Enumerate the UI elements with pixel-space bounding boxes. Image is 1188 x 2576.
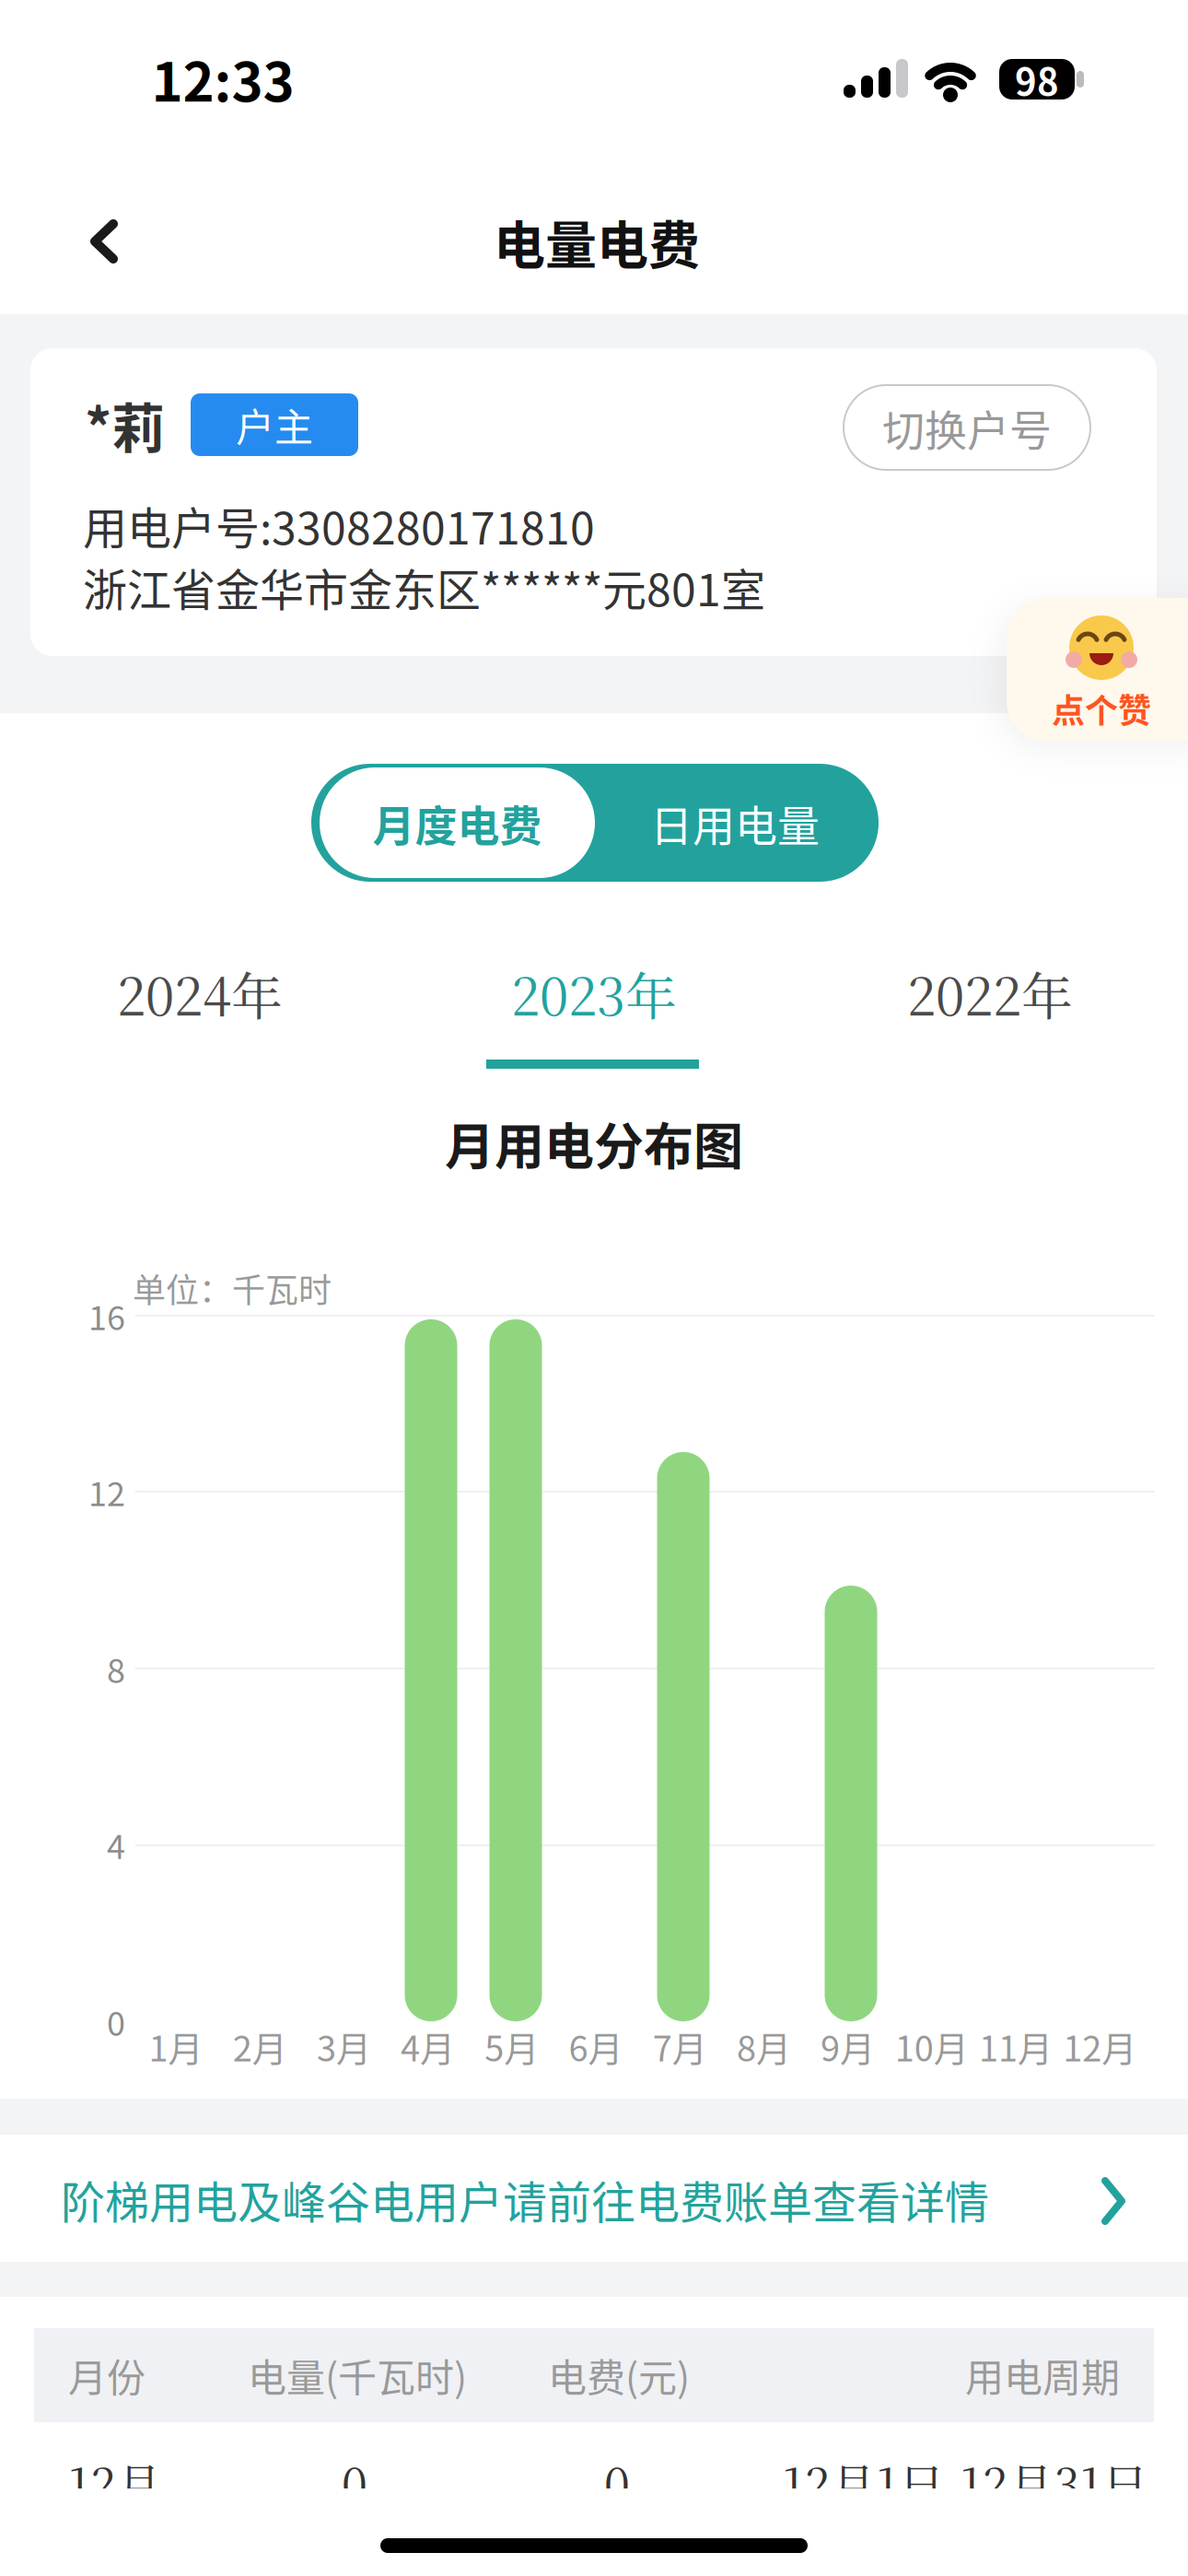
staticText: 日用电量	[650, 792, 820, 853]
staticText: 3月	[317, 2021, 371, 2072]
staticText: 切换户号	[882, 397, 1052, 458]
button[interactable]: 切换户号	[843, 384, 1091, 471]
staticText: 4	[107, 1820, 125, 1868]
button[interactable]: 返回	[63, 200, 146, 283]
staticText: 11月	[979, 2021, 1053, 2072]
button[interactable]: 2022年	[907, 956, 1073, 1030]
staticText: 电费(元)	[548, 2347, 690, 2403]
button[interactable]: 2024年	[117, 956, 283, 1030]
button[interactable]: 2023年	[511, 956, 677, 1030]
staticText: 12月	[68, 2449, 162, 2515]
staticText: 电量电费	[494, 204, 700, 279]
staticText: 0	[107, 1997, 125, 2045]
staticText: 12月	[1063, 2021, 1137, 2072]
staticText: 10月	[895, 2021, 969, 2072]
staticText: *莉	[85, 386, 165, 463]
staticText: 用电周期	[965, 2347, 1120, 2403]
staticText: 5月	[485, 2021, 539, 2072]
staticText: 户主	[236, 397, 313, 453]
staticText: 2022年	[907, 956, 1073, 1030]
staticText: 月份	[68, 2347, 146, 2403]
staticText: 4月	[401, 2021, 455, 2072]
staticText: 电量(千瓦时)	[248, 2347, 467, 2403]
staticText: 0	[342, 2449, 367, 2515]
staticText: 8	[107, 1644, 125, 1692]
staticText: 阶梯用电及峰谷电用户请前往电费账单查看详情	[61, 2167, 989, 2231]
staticText: 98	[1015, 53, 1059, 106]
staticText: 12:33	[151, 40, 294, 117]
staticText: 16	[88, 1292, 125, 1340]
button[interactable]: 阶梯用电及峰谷电用户请前往电费账单查看详情	[0, 2135, 1188, 2262]
button[interactable]: 月度电费	[320, 767, 595, 878]
staticText: 0	[604, 2449, 630, 2515]
staticText: 2月	[233, 2021, 287, 2072]
button[interactable]: 点个赞	[1007, 598, 1188, 741]
staticText: 2023年	[511, 956, 677, 1030]
staticText: 点个赞	[1052, 684, 1151, 732]
staticText: 9月	[821, 2021, 875, 2072]
staticText: 2024年	[117, 956, 283, 1030]
staticText: 月度电费	[373, 792, 542, 853]
staticText: 用电户号:3308280171810	[83, 493, 595, 557]
staticText: 12	[88, 1468, 125, 1516]
staticText: 浙江省金华市金东区******元801室	[83, 555, 765, 619]
staticText: 月用电分布图	[445, 1107, 743, 1179]
staticText: 12月1日-12月31日	[782, 2449, 1148, 2515]
staticText: 7月	[653, 2021, 707, 2072]
staticText: 单位：千瓦时	[133, 1264, 332, 1312]
staticText: 8月	[737, 2021, 791, 2072]
staticText: 1月	[149, 2021, 203, 2072]
button[interactable]: 日用电量	[597, 764, 873, 882]
staticText: 6月	[569, 2021, 623, 2072]
